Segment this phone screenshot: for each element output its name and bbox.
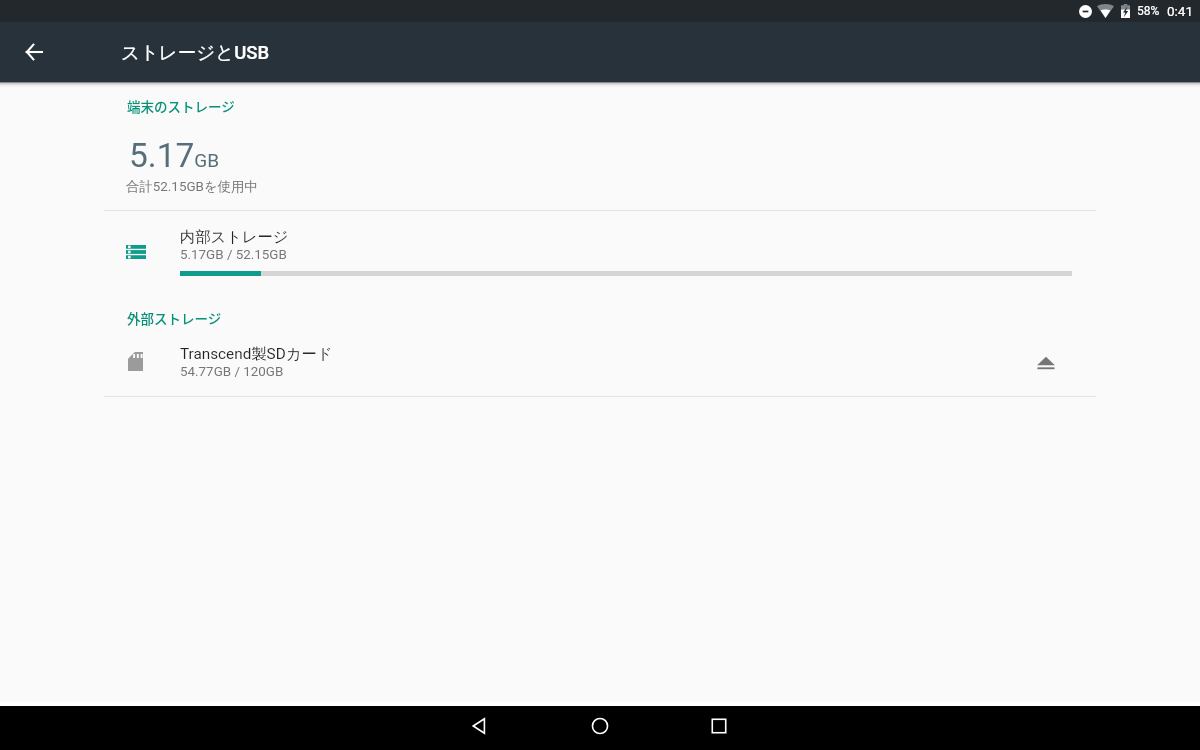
staticText: 内部ストレージ	[180, 227, 289, 246]
button[interactable]: Back	[0, 22, 68, 82]
staticText: 合計52.15GBを使用中	[126, 178, 258, 195]
staticText: 54.77GB / 120GB	[180, 364, 284, 380]
staticText: 外部ストレージ	[127, 308, 222, 328]
staticText: ストレージとUSB	[121, 41, 270, 64]
button[interactable]: Transcend製SDカード	[0, 333, 1200, 395]
staticText: 0:41	[1167, 3, 1194, 19]
staticText: 5.17GB	[129, 136, 220, 175]
button[interactable]: Eject SD card	[1031, 348, 1061, 378]
staticText: 5.17GB / 52.15GB	[180, 247, 287, 263]
button[interactable]: 内部ストレージ	[0, 212, 1200, 282]
button[interactable]: Back	[455, 704, 503, 748]
staticText: 58%	[1137, 4, 1160, 18]
staticText: Transcend製SDカード	[180, 344, 333, 363]
button[interactable]: Home	[576, 704, 624, 748]
button[interactable]: Recents	[695, 704, 743, 748]
staticText: 端末のストレージ	[127, 96, 235, 116]
